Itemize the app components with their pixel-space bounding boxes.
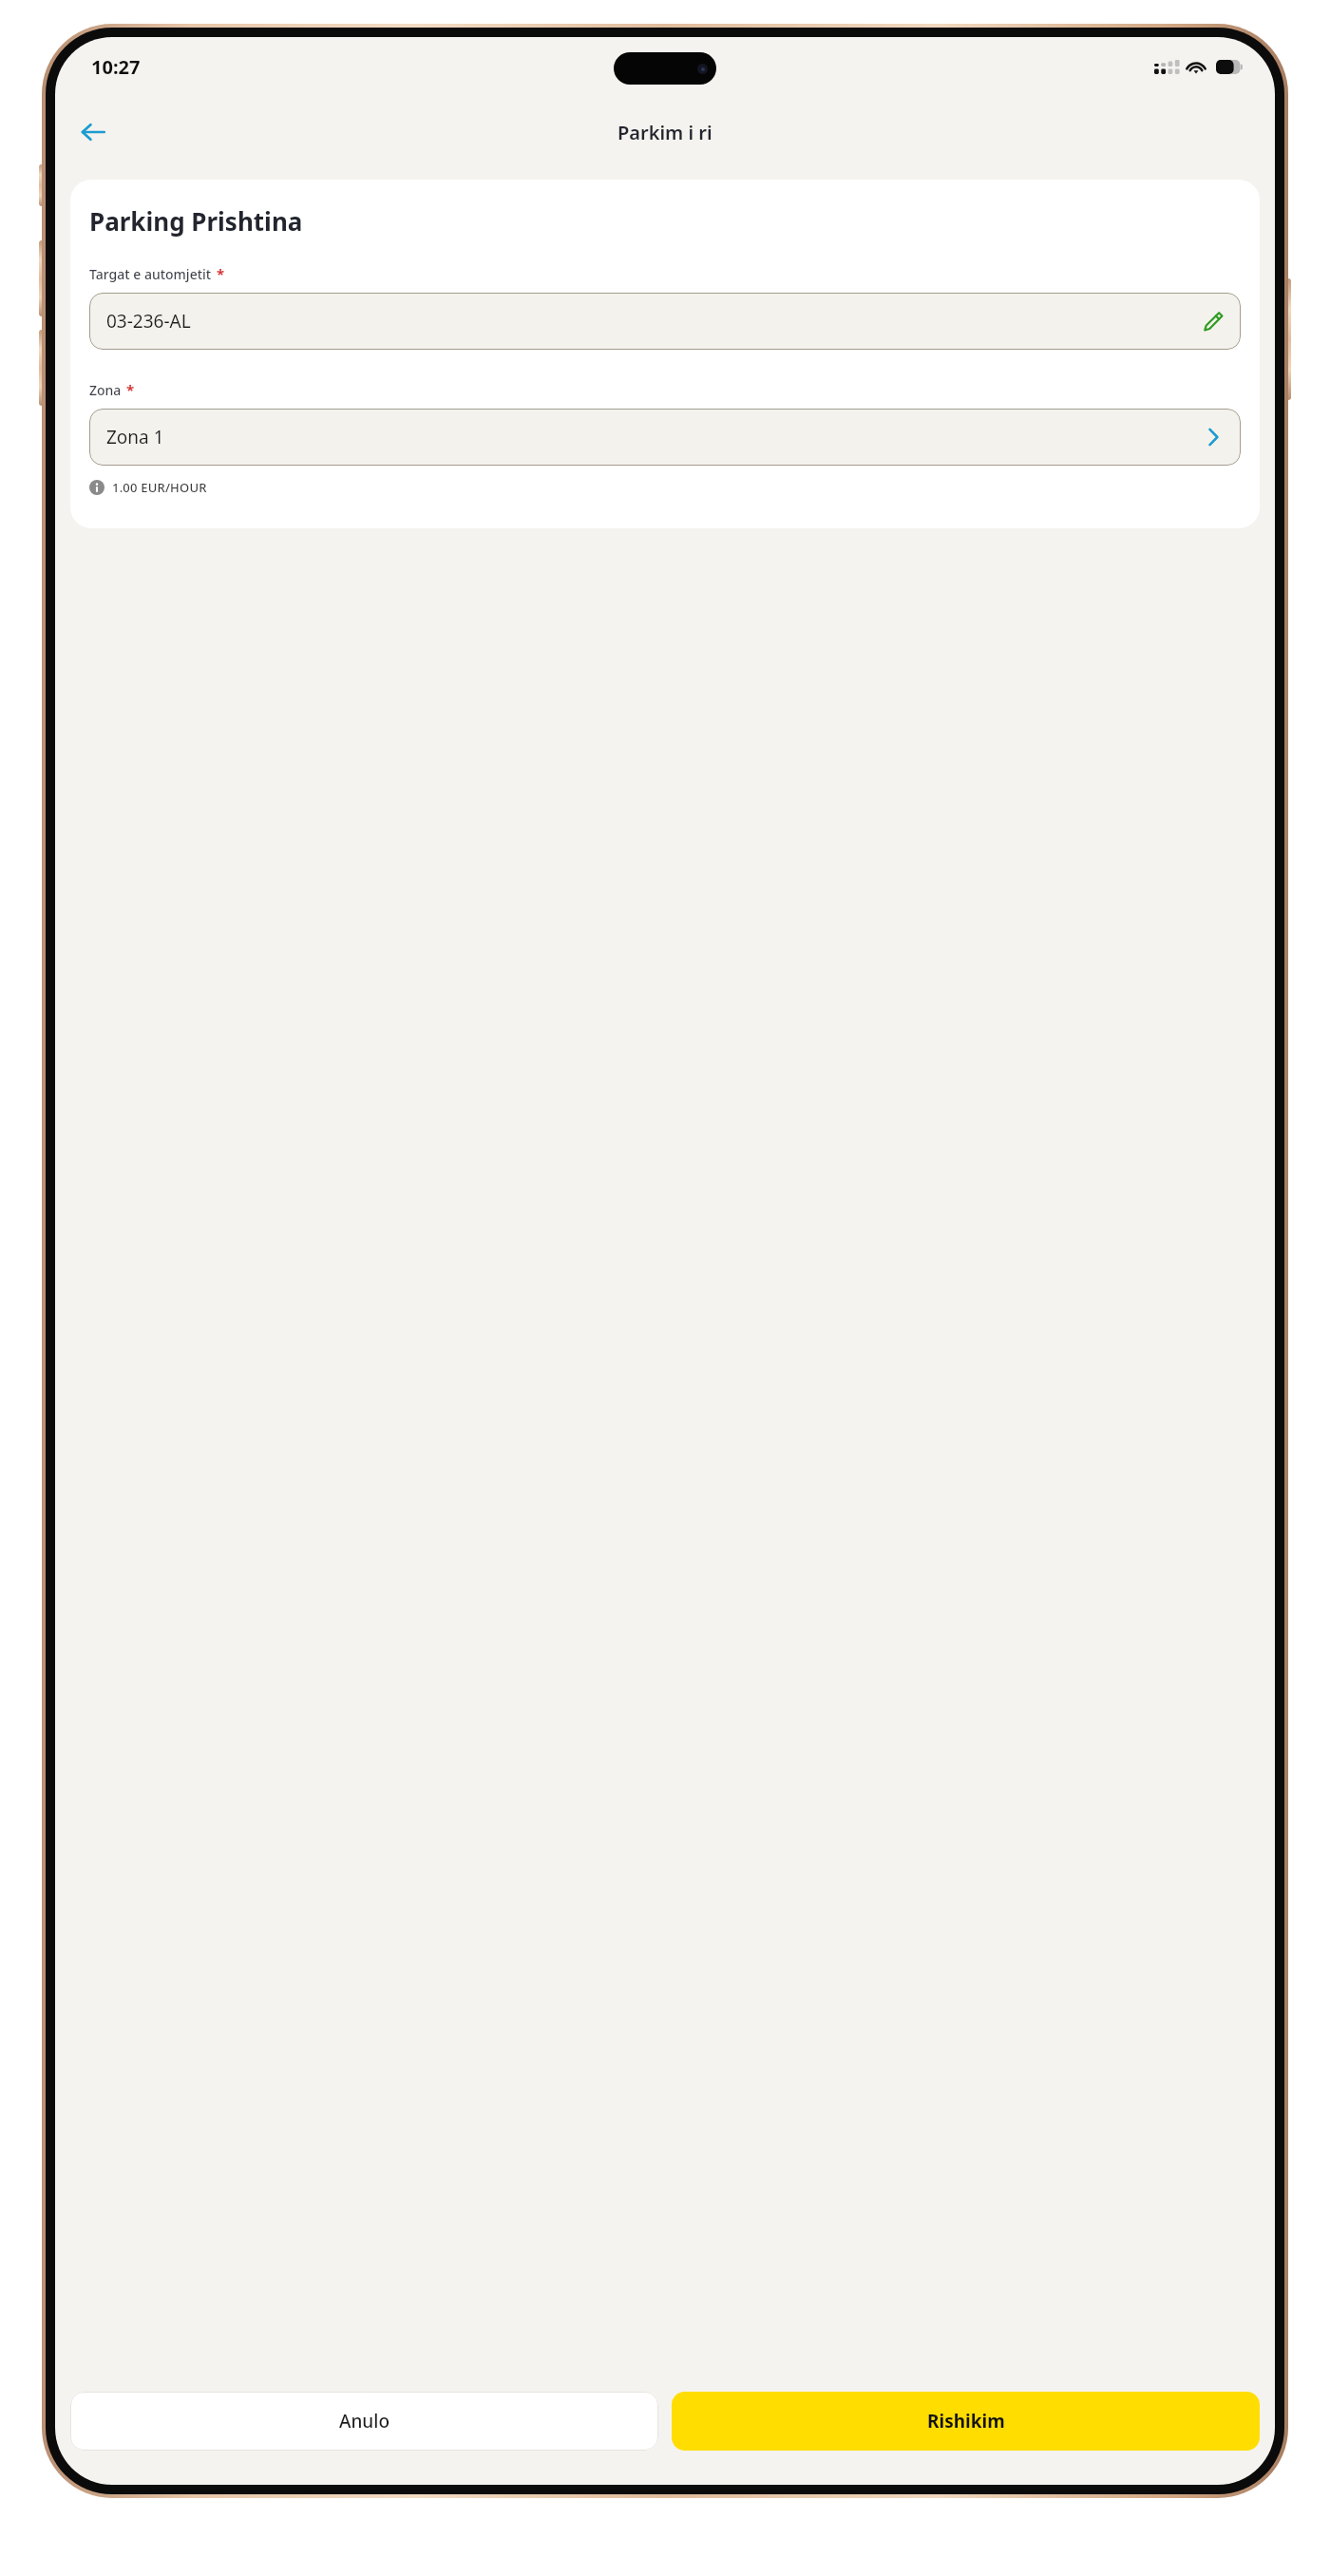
staticText: *	[126, 380, 135, 399]
staticText: Anulo	[339, 2409, 390, 2433]
other: Edit plate	[1203, 311, 1224, 332]
staticText: 03-236-AL	[106, 309, 1203, 334]
staticText: Parking Prishtina	[89, 204, 303, 238]
staticText: Zona	[89, 381, 122, 399]
staticText: Targat e automjetit	[89, 265, 212, 283]
staticText: Parkim i ri	[617, 120, 712, 145]
button[interactable]: Back	[68, 107, 118, 157]
staticText: Zona 1	[106, 425, 1203, 449]
staticText: Rishikim	[927, 2409, 1005, 2433]
staticText: 1.00 EUR/HOUR	[112, 479, 207, 496]
staticText: 10:27	[91, 54, 141, 80]
other: Choose zone	[1203, 427, 1224, 448]
button[interactable]: Zona 1	[89, 409, 1241, 466]
button[interactable]: Anulo	[70, 2392, 658, 2451]
button[interactable]: 03-236-AL	[89, 293, 1241, 350]
button[interactable]: Rishikim	[672, 2392, 1260, 2451]
staticText: *	[217, 264, 225, 283]
